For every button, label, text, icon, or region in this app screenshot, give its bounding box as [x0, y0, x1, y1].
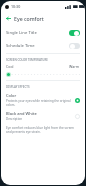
- button[interactable]: Color: [1, 91, 85, 109]
- button[interactable]: Single Line Title: [1, 26, 85, 39]
- button[interactable]: Back: [5, 15, 12, 22]
- staticText: Schedule Time: [6, 43, 69, 49]
- staticText: Protects your eyes while retaining the o…: [6, 99, 73, 107]
- staticText: Warm: [69, 64, 80, 69]
- staticText: Black and White: [6, 111, 37, 116]
- staticText: Cool: [6, 64, 14, 69]
- staticText: DISPLAY EFFECTS: [6, 85, 30, 89]
- staticText: Eye comfort: [14, 15, 44, 22]
- button[interactable]: Schedule Time: [1, 39, 85, 52]
- staticText: Eye comfort reduces blue light from the …: [6, 126, 80, 134]
- staticText: SCREEN COLOR TEMPERATURE: [6, 58, 48, 62]
- staticText: Color: [6, 93, 17, 98]
- button[interactable]: Color temperature slider: [6, 71, 80, 78]
- staticText: Single Line Title: [6, 30, 69, 36]
- staticText: Description: [6, 117, 23, 121]
- staticText: 10:30: [11, 4, 21, 9]
- button[interactable]: Black and White: [1, 109, 85, 123]
